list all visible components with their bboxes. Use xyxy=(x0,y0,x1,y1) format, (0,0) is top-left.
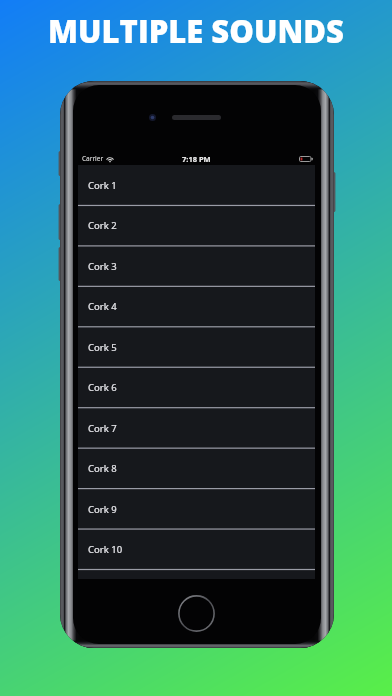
button[interactable]: Cork 4 xyxy=(78,286,315,326)
button[interactable]: Cork 9 xyxy=(78,489,315,529)
button[interactable]: Home xyxy=(178,595,215,632)
staticText: Cork 1 xyxy=(88,179,117,192)
staticText: Cork 9 xyxy=(88,503,117,516)
button[interactable]: Cork 5 xyxy=(78,327,315,367)
staticText: Cork 4 xyxy=(88,300,117,313)
staticText: Cork 6 xyxy=(88,381,117,394)
staticText: Cork 10 xyxy=(88,543,123,556)
staticText: Carrier xyxy=(82,154,104,163)
button[interactable]: Cork 3 xyxy=(78,246,315,286)
staticText: MULTIPLE SOUNDS xyxy=(0,10,392,52)
staticText: Cork 7 xyxy=(88,422,117,435)
staticText: Cork 8 xyxy=(88,462,117,475)
button[interactable]: Cork 10 xyxy=(78,529,315,569)
button[interactable]: Cork 2 xyxy=(78,205,315,245)
staticText: Cork 5 xyxy=(88,341,117,354)
staticText: Cork 2 xyxy=(88,219,117,232)
button[interactable]: Cork 8 xyxy=(78,448,315,488)
staticText: Cork 3 xyxy=(88,260,117,273)
button[interactable]: Cork 6 xyxy=(78,367,315,407)
button[interactable]: Cork 7 xyxy=(78,408,315,448)
staticText: 7:18 PM xyxy=(182,154,211,164)
button[interactable]: Cork 1 xyxy=(78,165,315,205)
